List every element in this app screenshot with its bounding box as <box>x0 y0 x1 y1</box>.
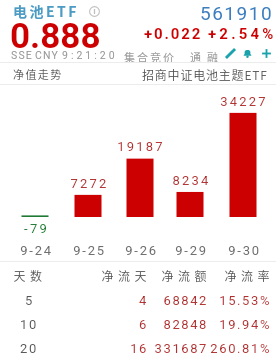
staticText: 0.888 <box>10 16 101 57</box>
staticText: -79 <box>24 221 49 236</box>
button[interactable]: Edit note <box>225 48 236 59</box>
staticText: 82848 <box>163 317 208 332</box>
staticText: 5 <box>25 293 34 308</box>
button[interactable]: Add to watchlist <box>261 48 272 59</box>
staticText: 331687 <box>154 341 208 356</box>
staticText: 260.81% <box>210 341 271 356</box>
button[interactable]: 天数 <box>0 263 276 287</box>
button[interactable]: 20 <box>0 336 276 360</box>
staticText: 净流率 <box>224 267 274 284</box>
staticText: 9-29 <box>175 243 208 258</box>
staticText: 4 <box>139 293 148 308</box>
staticText: 34227 <box>220 94 268 109</box>
staticText: 通 <box>190 49 201 65</box>
staticText: +2.54% <box>208 25 276 43</box>
staticText: 净流额 <box>161 267 211 284</box>
staticText: 7272 <box>70 176 109 191</box>
staticText: 8234 <box>172 173 211 188</box>
staticText: 15.53% <box>219 293 271 308</box>
staticText: 净流天 <box>101 267 151 284</box>
staticText: 19.94% <box>219 317 271 332</box>
staticText: 9-26 <box>125 243 158 258</box>
button[interactable]: 10 <box>0 312 276 336</box>
staticText: 天数 <box>13 267 47 284</box>
staticText: 9-25 <box>73 243 106 258</box>
staticText: SSE <box>11 49 34 61</box>
staticText: 9-30 <box>228 243 261 258</box>
staticText: 19187 <box>117 139 165 154</box>
staticText: CNY <box>35 49 60 61</box>
staticText: 集合竞价 <box>124 49 176 65</box>
staticText: 电池ETF <box>13 1 80 21</box>
staticText: 招商中证电池主题ETF <box>142 66 268 83</box>
button[interactable]: 电池ETF <box>13 1 80 21</box>
staticText: 20 <box>20 341 38 356</box>
staticText: 10 <box>20 317 38 332</box>
staticText: 9-24 <box>20 243 53 258</box>
staticText: 9:21:20 <box>62 49 118 61</box>
staticText: 净值走势 <box>13 66 63 82</box>
button[interactable]: Price alert <box>242 48 253 59</box>
staticText: 68842 <box>163 293 208 308</box>
staticText: 融 <box>207 49 218 65</box>
staticText: +0.022 <box>144 25 203 43</box>
staticText: 16 <box>130 341 148 356</box>
staticText: 6 <box>139 317 148 332</box>
button[interactable]: Info <box>88 5 100 17</box>
button[interactable]: 5 <box>0 288 276 312</box>
staticText: 561910 <box>200 2 274 24</box>
